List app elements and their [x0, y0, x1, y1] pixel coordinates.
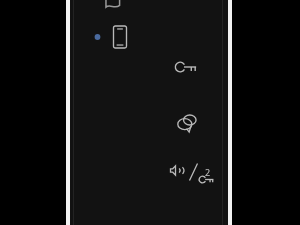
button[interactable]: Messages — [173, 110, 203, 138]
staticText: 2 — [205, 166, 211, 178]
button[interactable]: Paired phone — [92, 22, 148, 52]
button[interactable]: Sound and key two — [164, 162, 216, 190]
button[interactable]: Key — [170, 54, 204, 80]
button[interactable]: Location — [102, 0, 124, 12]
